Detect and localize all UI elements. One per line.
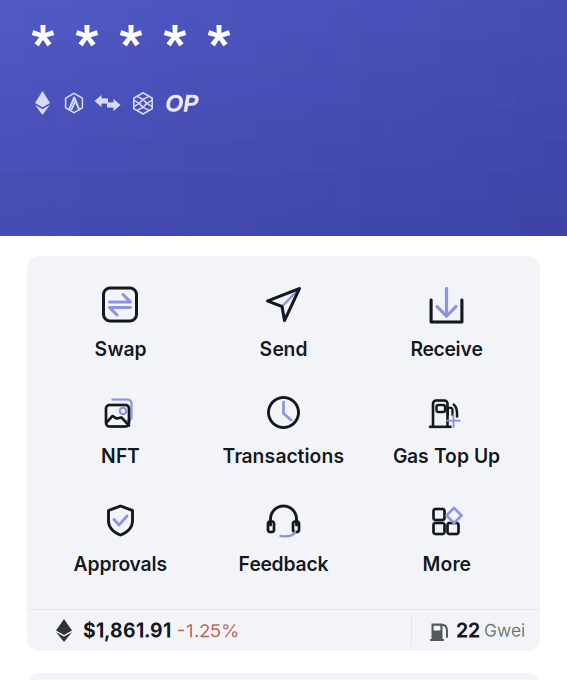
staticText: Gas Top Up (393, 444, 500, 468)
staticText: OP (165, 88, 198, 117)
staticText: $1,861.91 (83, 619, 171, 642)
staticText: Feedback (238, 552, 328, 576)
button[interactable]: Receive (365, 288, 528, 359)
button[interactable]: Send (202, 288, 365, 359)
button[interactable]: Swap (39, 288, 202, 359)
staticText: -1.25% (177, 619, 239, 642)
button[interactable]: More (365, 504, 528, 575)
staticText: 22 (456, 619, 480, 642)
staticText: Gwei (484, 620, 525, 641)
staticText: Swap (94, 337, 146, 361)
staticText: Receive (410, 337, 482, 361)
button[interactable]: Transactions (202, 396, 365, 467)
button[interactable]: Feedback (202, 504, 365, 575)
button[interactable]: Approvals (39, 504, 202, 575)
button[interactable]: Gas Top Up (365, 396, 528, 467)
button[interactable]: NFT (39, 396, 202, 467)
staticText: Approvals (73, 552, 167, 576)
staticText: Transactions (222, 444, 344, 468)
staticText: Send (259, 337, 307, 361)
staticText: More (422, 552, 470, 576)
staticText: NFT (101, 444, 140, 468)
